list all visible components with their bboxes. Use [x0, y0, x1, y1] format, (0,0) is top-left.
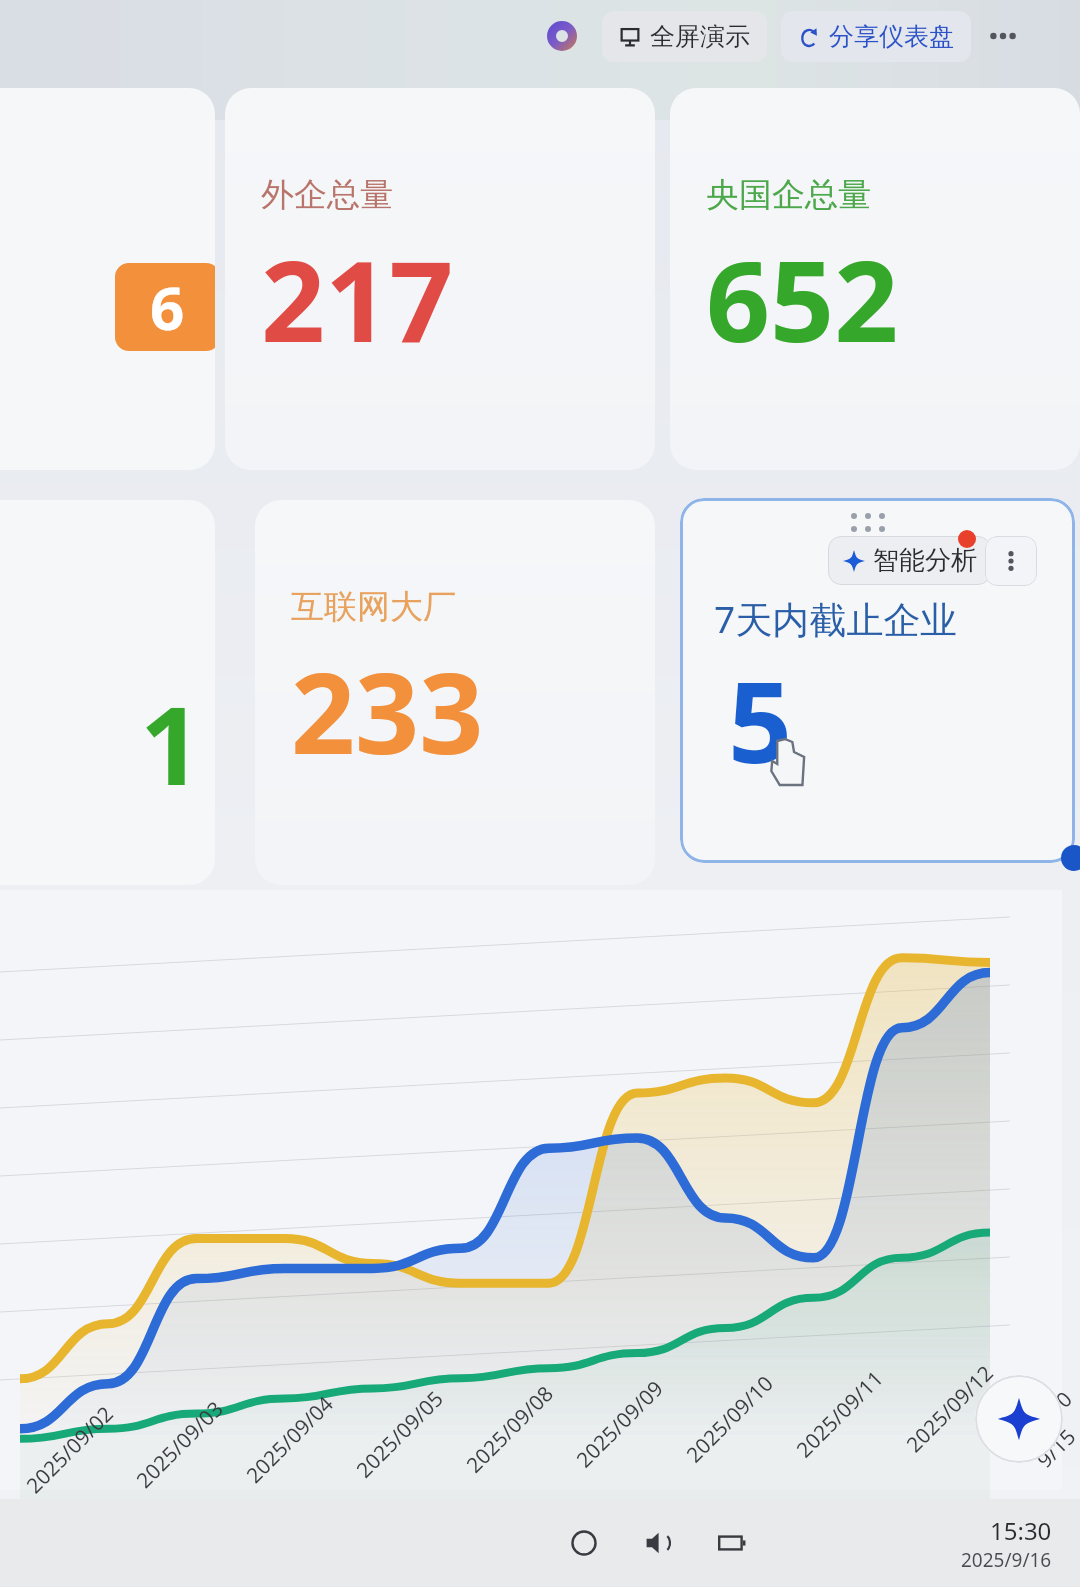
- button[interactable]: 更多操作: [985, 536, 1037, 586]
- staticText: 217: [261, 222, 454, 375]
- staticText: 互联网大厂: [291, 586, 456, 628]
- staticText: 全屏演示: [650, 21, 750, 52]
- button[interactable]: 分享仪表盘: [781, 11, 971, 62]
- button[interactable]: 电池: [708, 1519, 756, 1567]
- button[interactable]: 1: [0, 500, 215, 885]
- staticText: 1: [140, 670, 202, 817]
- staticText: 外企总量: [261, 174, 393, 216]
- staticText: 5: [728, 643, 793, 796]
- staticText: 233: [291, 634, 484, 787]
- button[interactable]: AI 助手: [975, 1375, 1063, 1463]
- button[interactable]: 6: [0, 88, 215, 470]
- button[interactable]: 外企总量: [225, 88, 655, 470]
- button[interactable]: [0, 0, 1080, 1587]
- staticText: 智能分析: [873, 544, 977, 577]
- staticText: 央国企总量: [706, 174, 871, 216]
- staticText: 652: [706, 222, 899, 375]
- button[interactable]: 智能分析: [828, 536, 991, 585]
- button[interactable]: Logo: [540, 14, 584, 58]
- button[interactable]: 互联网大厂: [255, 500, 655, 885]
- button[interactable]: [680, 498, 1075, 863]
- button[interactable]: 全屏演示: [602, 11, 767, 62]
- button[interactable]: 音量: [634, 1519, 682, 1567]
- staticText: 7天内截止企业: [714, 593, 958, 644]
- button[interactable]: 搜索: [560, 1519, 608, 1567]
- staticText: 15:30: [990, 1514, 1052, 1547]
- button[interactable]: 更多: [981, 14, 1025, 58]
- button[interactable]: 央国企总量: [670, 88, 1080, 470]
- staticText: 2025/9/16: [961, 1547, 1052, 1573]
- staticText: 分享仪表盘: [829, 21, 954, 52]
- staticText: 6: [150, 266, 185, 348]
